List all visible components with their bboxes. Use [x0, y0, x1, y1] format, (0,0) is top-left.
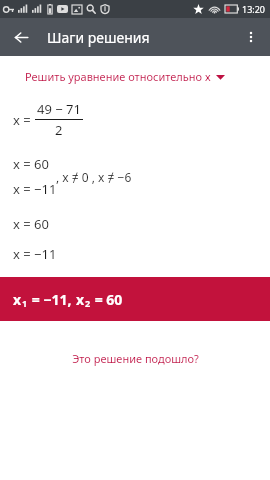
button[interactable]: Это решение подошло? [0, 347, 270, 370]
staticText: 1 [22, 297, 28, 309]
button[interactable]: Решить уравнение относительно х [0, 65, 270, 88]
button[interactable]: x [0, 277, 270, 321]
staticText: 49 − 71 [37, 100, 81, 118]
button[interactable]: Back [6, 22, 36, 52]
staticText: = 60 [91, 290, 123, 309]
staticText: x [13, 290, 22, 309]
staticText: x = 60 [13, 215, 49, 233]
staticText: Это решение подошло? [72, 351, 199, 366]
staticText: = −11, [28, 290, 76, 309]
button[interactable]: More options [236, 22, 266, 52]
staticText: Решить уравнение относительно х [25, 69, 211, 84]
staticText: x = 60 [13, 155, 49, 173]
staticText: , x ≠ 0 , x ≠ −6 [56, 169, 132, 185]
staticText: 2 [85, 297, 91, 309]
staticText: x = −11 [13, 180, 57, 198]
staticText: x [76, 290, 85, 309]
staticText: x = [13, 111, 31, 129]
staticText: 13:20 [242, 3, 266, 15]
staticText: Шаги решения [47, 28, 150, 47]
staticText: 2 [55, 121, 63, 139]
staticText: x = −11 [13, 245, 57, 263]
